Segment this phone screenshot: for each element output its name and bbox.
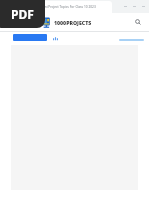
button[interactable]: PDF [0, 0, 45, 28]
button[interactable]: Search [133, 17, 143, 27]
button[interactable]: Maximize [132, 4, 137, 9]
button[interactable]: Close [141, 4, 146, 9]
button[interactable]: Minimize [123, 4, 128, 9]
button[interactable] [13, 34, 47, 41]
staticText: Mini Project Topics For Class 10 2023 [41, 5, 96, 9]
staticText: 1000PROJECTS [54, 19, 92, 26]
button[interactable]: Mini Project Topics For Class 10 2023 [38, 1, 112, 13]
button[interactable] [119, 39, 144, 41]
button[interactable]: Menu [52, 35, 58, 41]
button[interactable]: 1000PROJECTS [41, 17, 92, 28]
staticText: PDF [11, 6, 34, 22]
